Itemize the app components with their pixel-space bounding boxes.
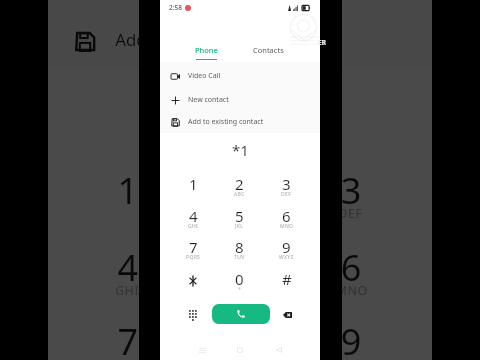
staticText: PQRS <box>110 358 146 360</box>
button[interactable]: 2 <box>216 171 263 203</box>
button[interactable]: # <box>263 266 310 298</box>
staticText: 7 <box>118 317 139 360</box>
staticText: 2:58 <box>169 3 182 12</box>
staticText: 6 <box>282 206 291 226</box>
button[interactable]: Recents <box>191 339 213 360</box>
staticText: 5 <box>235 206 244 226</box>
button[interactable]: 6 <box>295 235 408 312</box>
button[interactable]: 0 <box>216 266 263 298</box>
staticText: Contacts <box>253 45 284 55</box>
staticText: 8 <box>228 317 250 360</box>
staticText: 9 <box>282 237 291 257</box>
staticText: Add to existing contact <box>115 29 298 53</box>
staticText: *1 <box>221 84 262 127</box>
staticText: *1 <box>232 140 249 158</box>
button[interactable]: Add to existing contact <box>160 111 320 133</box>
button[interactable]: 2 <box>182 158 295 235</box>
button[interactable]: Backspace <box>276 304 298 326</box>
staticText: 2 <box>235 174 244 194</box>
button[interactable]: 9 <box>263 234 310 266</box>
staticText: ABC <box>226 206 252 223</box>
staticText: 0 <box>235 269 244 289</box>
button[interactable]: 9 <box>295 310 408 360</box>
button[interactable]: 5 <box>182 235 295 312</box>
button[interactable]: Video Call <box>160 65 320 87</box>
staticText: MNO <box>336 283 370 300</box>
button[interactable]: Phone <box>176 45 237 65</box>
staticText: 1 <box>118 166 139 214</box>
button[interactable]: 5 <box>216 203 263 235</box>
button[interactable]: 4 <box>170 203 216 235</box>
button[interactable]: 3 <box>295 158 408 235</box>
staticText: ABC <box>234 191 245 198</box>
button[interactable]: Call <box>212 304 270 324</box>
staticText: PQRS <box>186 254 201 261</box>
staticText: WXYZ <box>334 358 370 360</box>
staticText: 7 <box>189 237 198 257</box>
button[interactable]: 8 <box>182 310 295 360</box>
button[interactable]: Keypad <box>182 304 204 326</box>
button[interactable]: Back <box>268 339 290 360</box>
staticText: Video Call <box>188 71 221 81</box>
staticText: JKL <box>228 283 250 300</box>
staticText: 3 <box>341 166 362 214</box>
button[interactable]: 1 <box>72 158 182 235</box>
staticText: 2 <box>228 166 250 214</box>
staticText: 3 <box>282 174 291 194</box>
staticText: ER <box>318 38 326 47</box>
staticText: 4 <box>118 242 139 290</box>
staticText: 8 <box>235 237 244 257</box>
button[interactable] <box>170 266 216 298</box>
staticText: MNO <box>280 223 294 230</box>
staticText: GHI <box>188 223 199 230</box>
button[interactable]: 7 <box>170 234 216 266</box>
staticText: # <box>282 269 292 289</box>
staticText: DEF <box>281 191 292 198</box>
staticText: DEF <box>338 206 365 223</box>
button[interactable]: 3 <box>263 171 310 203</box>
staticText: TUV <box>234 254 245 261</box>
staticText: 6 <box>341 242 362 290</box>
button[interactable]: 7 <box>72 310 182 360</box>
button[interactable]: 8 <box>216 234 263 266</box>
staticText: 4 <box>189 206 198 226</box>
button[interactable]: Add to existing contact <box>48 14 432 67</box>
button[interactable]: New contact <box>48 0 432 14</box>
staticText: 1 <box>189 174 198 194</box>
staticText: WXYZ <box>279 254 294 261</box>
staticText: GHI <box>115 283 142 300</box>
staticText: + <box>238 286 242 293</box>
button[interactable]: Home <box>229 339 251 360</box>
button[interactable]: 1 <box>170 171 216 203</box>
staticText: 5 <box>228 242 250 290</box>
button[interactable]: Contacts <box>238 45 299 65</box>
button[interactable]: 4 <box>72 235 182 312</box>
staticText: 9 <box>341 317 362 360</box>
staticText: Add to existing contact <box>188 117 264 127</box>
button[interactable]: 6 <box>263 203 310 235</box>
button[interactable]: New contact <box>160 89 320 111</box>
staticText: New contact <box>188 95 229 105</box>
staticText: JKL <box>235 223 244 230</box>
staticText: Phone <box>195 45 218 55</box>
